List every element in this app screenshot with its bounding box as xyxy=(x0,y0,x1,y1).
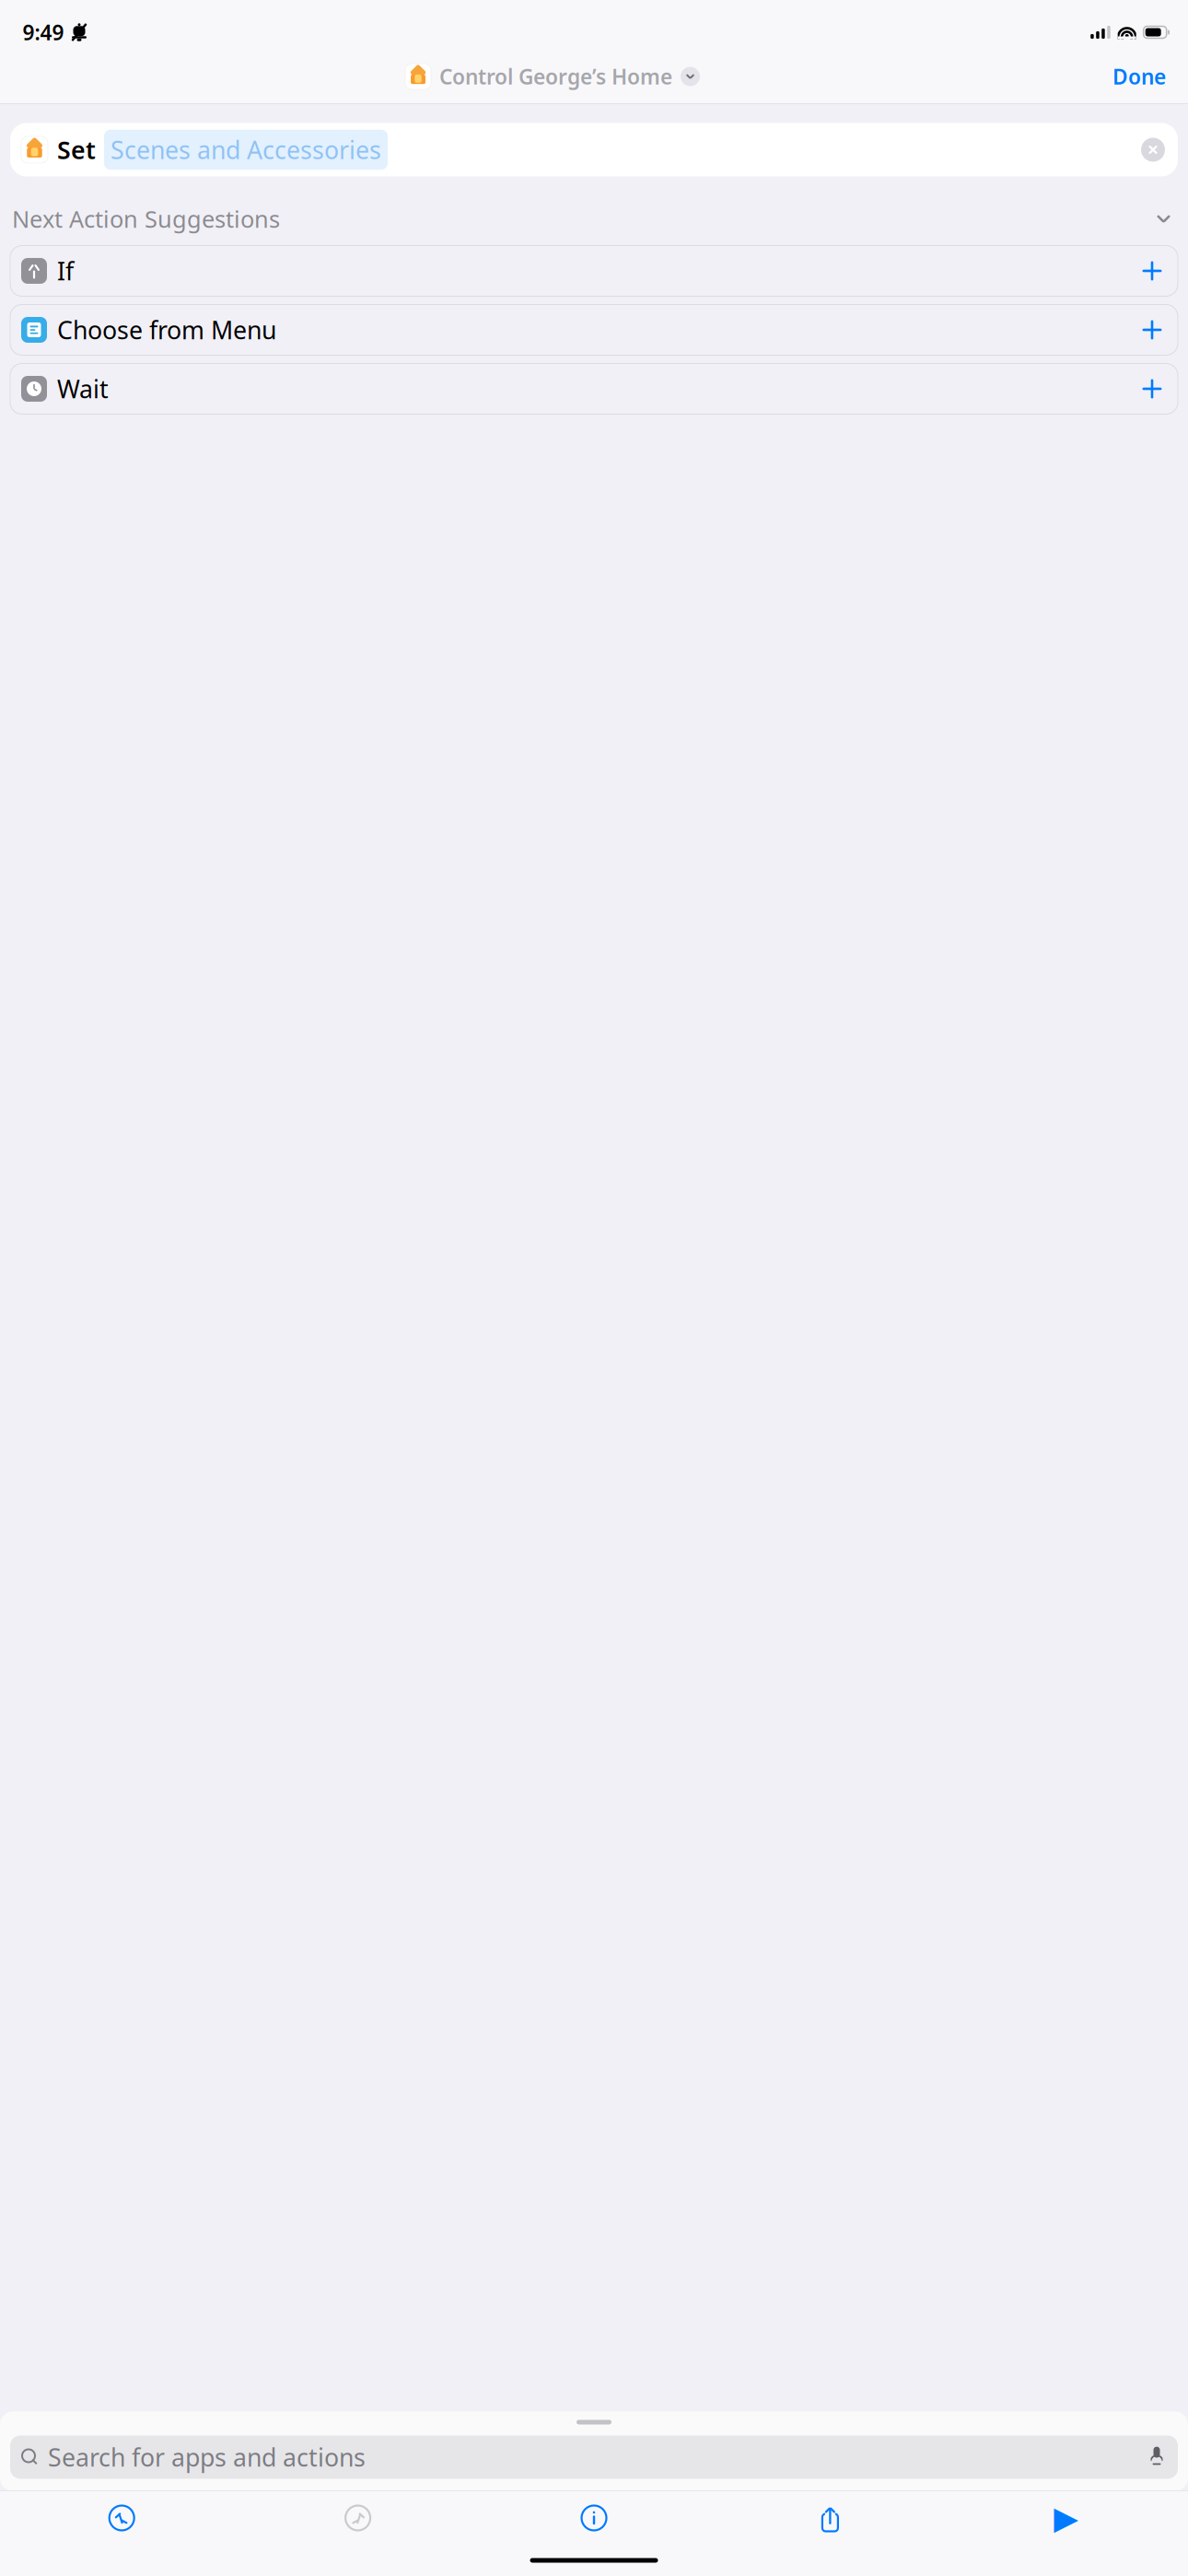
button[interactable]: Share xyxy=(814,2502,846,2534)
staticText: ▶ xyxy=(1054,2500,1079,2536)
button[interactable]: Control George’s Home xyxy=(402,57,704,96)
staticText: Scenes and Accessories xyxy=(111,133,381,166)
staticText: Control George’s Home xyxy=(439,63,672,90)
button[interactable]: Search for apps and actions xyxy=(10,2435,1178,2479)
button[interactable]: Undo xyxy=(106,2502,137,2534)
staticText: Done xyxy=(1112,63,1166,90)
button[interactable]: Redo xyxy=(342,2502,374,2534)
button[interactable]: Set xyxy=(10,123,1178,176)
button[interactable]: Done xyxy=(1096,55,1182,98)
button[interactable]: If xyxy=(10,246,1178,296)
button[interactable]: Choose from Menu xyxy=(10,304,1178,355)
staticText: If xyxy=(57,255,74,287)
staticText: Next Action Suggestions xyxy=(12,203,280,234)
staticText: Set xyxy=(57,133,96,166)
staticText: Wait xyxy=(57,372,109,405)
staticText: Choose from Menu xyxy=(57,314,276,346)
button[interactable]: Details xyxy=(578,2502,610,2534)
button[interactable]: Next Action Suggestions xyxy=(12,203,1176,234)
button[interactable]: Run xyxy=(1051,2502,1082,2534)
button[interactable]: Wait xyxy=(10,363,1178,414)
staticText: 9:49 xyxy=(23,18,64,46)
staticText: Search for apps and actions xyxy=(48,2441,366,2473)
